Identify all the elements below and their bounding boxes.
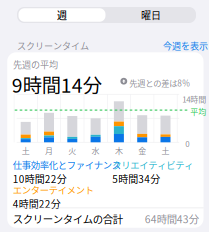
staticText: 64時間43分 [145, 211, 199, 226]
staticText: 火 [68, 145, 76, 156]
staticText: 土 [22, 145, 30, 156]
staticText: 土 [161, 145, 169, 156]
staticText: 先週との差は8% [129, 77, 190, 89]
staticText: エンターテイメント [13, 183, 94, 196]
staticText: 木 [115, 145, 123, 156]
button[interactable]: スクリーンタイムの合計 [13, 209, 199, 228]
staticText: 10時間22分 [13, 171, 67, 186]
staticText: 9時間14分 [12, 70, 102, 98]
button[interactable]: 週 [18, 8, 105, 22]
staticText: 5時間34分 [112, 171, 160, 186]
staticText: 先週の平均 [13, 58, 58, 71]
staticText: 水 [92, 145, 100, 156]
staticText: クリエイティビティ [112, 158, 193, 171]
staticText: 仕事効率化とファイナンス [13, 158, 121, 171]
staticText: 月 [45, 145, 53, 156]
staticText: 平均 [190, 106, 206, 117]
staticText: 0 [185, 138, 189, 149]
staticText: 4時間22分 [13, 196, 61, 211]
button[interactable]: 今週を表示 [163, 39, 208, 52]
staticText: 金 [138, 145, 146, 156]
button[interactable]: 曜日 [107, 8, 194, 22]
staticText: 今週を表示 [163, 39, 208, 52]
staticText: 14時間 [182, 93, 206, 105]
staticText: 週 [57, 8, 67, 22]
staticText: 曜日 [141, 8, 161, 22]
staticText: スクリーンタイムの合計 [13, 211, 123, 226]
staticText: スクリーンタイム [17, 39, 89, 52]
